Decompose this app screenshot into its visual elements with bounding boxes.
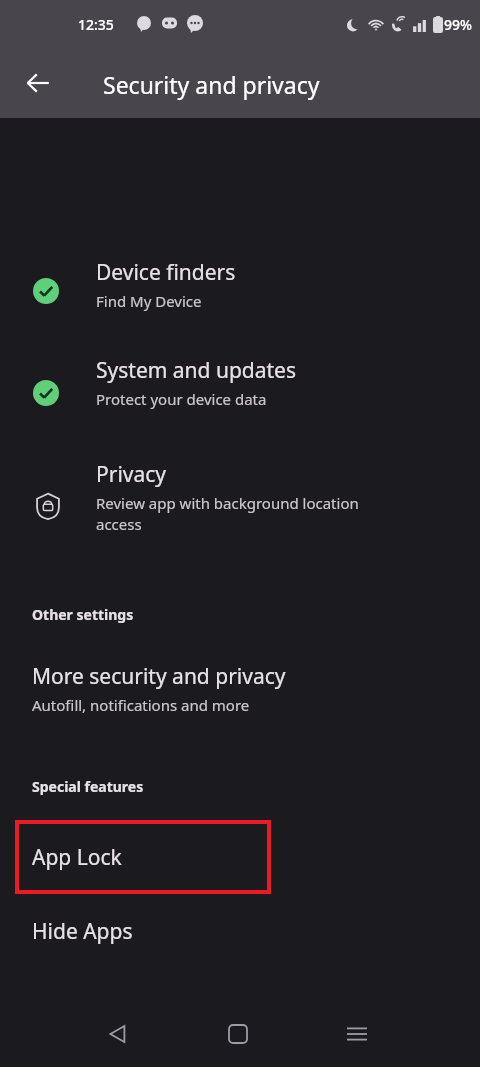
staticText: Security and privacy [103,69,320,100]
button[interactable]: Home [208,1004,268,1064]
staticText: More security and privacy [32,662,286,691]
staticText: Review app with background location acce… [96,493,359,535]
button[interactable]: Back [88,1004,148,1064]
staticText: 12:35 [78,15,114,34]
button[interactable]: More security and privacy [0,656,480,732]
staticText: Protect your device data [96,389,267,409]
staticText: Special features [32,777,144,796]
staticText: Other settings [32,605,134,624]
button[interactable]: Private Safe [0,976,480,1042]
button[interactable]: Hide Apps [0,898,480,964]
button[interactable]: Back [10,55,66,111]
staticText: Autofill, notifications and more [32,695,250,715]
staticText: Privacy [96,460,167,489]
button[interactable]: Recent apps [327,1004,387,1064]
staticText: System and updates [96,356,297,385]
staticText: App Lock [32,843,122,872]
button[interactable]: System and updates [0,350,480,438]
staticText: Hide Apps [32,917,133,946]
staticText: Device finders [96,258,236,287]
button[interactable]: Privacy [0,454,480,564]
staticText: 99% [444,15,472,34]
button[interactable]: App Lock [0,818,480,896]
button[interactable]: Device finders [0,252,480,340]
staticText: Find My Device [96,291,202,311]
